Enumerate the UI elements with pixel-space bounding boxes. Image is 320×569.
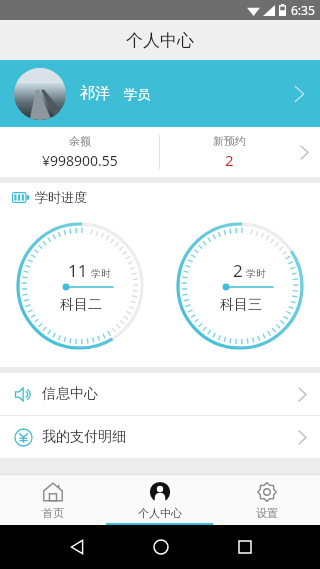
button[interactable]: 11 [0,211,160,361]
staticText: 我的支付明细 [42,428,126,446]
button[interactable]: 新预约 [160,134,320,170]
button[interactable]: 祁洋 [0,60,320,127]
staticText: 设置 [256,506,278,520]
staticText: ¥998900.55 [42,151,118,170]
staticText: 科目二 [60,296,102,314]
button[interactable]: 设置 [213,475,320,525]
staticText: 学时进度 [35,189,87,205]
staticText: 学时 [246,267,266,280]
staticText: 2 [233,259,243,282]
button[interactable]: 2 [160,211,320,361]
staticText: 11 [68,259,88,282]
staticText: 个人中心 [126,30,194,51]
staticText: 2 [225,150,234,170]
button[interactable]: 个人中心 [106,475,213,525]
other: Back [69,539,85,555]
staticText: 学员 [124,86,150,102]
button[interactable]: 信息中心 [0,373,320,415]
staticText: 祁洋 [80,84,110,103]
staticText: 学时 [91,267,111,280]
staticText: 6:35 [291,2,315,18]
button[interactable]: 余额 [0,134,159,170]
other: 设置 [256,481,278,503]
other: Recents [238,540,252,554]
button[interactable]: 首页 [0,475,106,525]
staticText: 个人中心 [138,506,182,520]
other: 个人中心 [149,481,171,503]
button[interactable]: 我的支付明细 [0,416,320,458]
staticText: 余额 [69,134,91,148]
other: Home [153,539,169,555]
staticText: 新预约 [213,134,246,148]
staticText: 首页 [42,506,64,520]
staticText: 科目三 [220,296,262,314]
other: 首页 [42,481,64,503]
staticText: 信息中心 [42,385,98,403]
